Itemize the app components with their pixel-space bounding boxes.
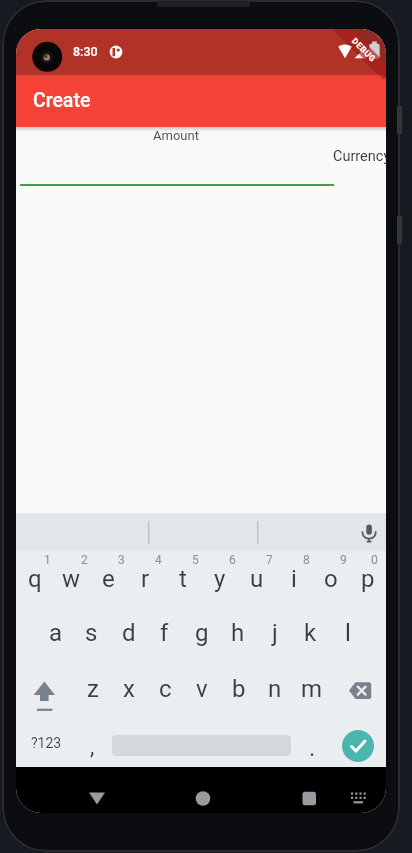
- staticText: k: [304, 619, 317, 647]
- staticText: d: [122, 619, 136, 647]
- staticText: l: [345, 619, 351, 647]
- button[interactable]: f: [146, 613, 183, 653]
- button[interactable]: [26, 671, 62, 711]
- staticText: y: [214, 565, 226, 593]
- staticText: r: [141, 565, 150, 593]
- staticText: Create: [33, 89, 91, 112]
- button[interactable]: o: [312, 559, 349, 599]
- button[interactable]: x: [110, 669, 147, 709]
- button[interactable]: l: [329, 613, 366, 653]
- button[interactable]: Create: [16, 75, 386, 127]
- staticText: Currency: [333, 148, 386, 165]
- staticText: ?123: [31, 735, 62, 751]
- button[interactable]: ,: [74, 727, 111, 767]
- staticText: t: [179, 565, 187, 593]
- staticText: e: [102, 565, 115, 593]
- button[interactable]: [183, 778, 223, 810]
- staticText: u: [250, 565, 264, 593]
- button[interactable]: n: [256, 669, 293, 709]
- staticText: v: [196, 675, 208, 703]
- button[interactable]: m: [293, 669, 330, 709]
- staticText: ,: [90, 734, 95, 760]
- staticText: 8: [303, 553, 310, 567]
- staticText: DEBUG: [350, 36, 378, 64]
- button[interactable]: [340, 671, 376, 711]
- button[interactable]: j: [256, 613, 293, 653]
- staticText: 0: [371, 553, 378, 567]
- button[interactable]: [338, 778, 378, 810]
- button[interactable]: q: [16, 559, 53, 599]
- staticText: p: [361, 565, 375, 593]
- staticText: n: [268, 675, 282, 703]
- staticText: 2: [81, 553, 88, 567]
- button[interactable]: t: [164, 559, 201, 599]
- button[interactable]: a: [37, 613, 74, 653]
- button[interactable]: [77, 778, 117, 810]
- staticText: 7: [266, 553, 273, 567]
- staticText: z: [87, 675, 99, 703]
- button[interactable]: d: [110, 613, 147, 653]
- staticText: 6: [229, 553, 236, 567]
- staticText: q: [28, 565, 42, 593]
- button[interactable]: e: [90, 559, 127, 599]
- staticText: h: [231, 619, 245, 647]
- button[interactable]: c: [147, 669, 184, 709]
- staticText: m: [301, 675, 323, 703]
- staticText: j: [272, 619, 278, 647]
- button[interactable]: k: [292, 613, 329, 653]
- staticText: .: [309, 734, 316, 762]
- staticText: w: [62, 565, 81, 593]
- button[interactable]: .: [294, 728, 331, 768]
- staticText: s: [85, 619, 98, 647]
- staticText: x: [123, 675, 135, 703]
- button[interactable]: g: [183, 613, 220, 653]
- staticText: o: [324, 565, 338, 593]
- staticText: Amount: [153, 128, 199, 143]
- staticText: 5: [192, 553, 199, 567]
- button[interactable]: s: [73, 613, 110, 653]
- staticText: c: [159, 675, 172, 703]
- button[interactable]: u: [238, 559, 275, 599]
- button[interactable]: [352, 517, 384, 549]
- staticText: 1: [44, 553, 51, 567]
- button[interactable]: p: [349, 559, 386, 599]
- button[interactable]: w: [53, 559, 90, 599]
- staticText: 9: [340, 553, 347, 567]
- staticText: a: [49, 619, 63, 647]
- button[interactable]: z: [74, 669, 111, 709]
- button[interactable]: v: [183, 669, 220, 709]
- staticText: b: [232, 675, 246, 703]
- staticText: g: [195, 619, 209, 647]
- button[interactable]: Currency: [333, 148, 386, 170]
- staticText: i: [291, 565, 297, 593]
- staticText: 8:30: [73, 44, 98, 59]
- button[interactable]: h: [219, 613, 256, 653]
- staticText: 4: [155, 553, 162, 567]
- button[interactable]: r: [127, 559, 164, 599]
- button[interactable]: i: [275, 559, 312, 599]
- staticText: f: [160, 619, 169, 647]
- button[interactable]: y: [201, 559, 238, 599]
- button[interactable]: [342, 730, 374, 762]
- button[interactable]: ?123: [28, 723, 65, 763]
- button[interactable]: [289, 778, 329, 810]
- staticText: 3: [118, 553, 125, 567]
- button[interactable]: b: [220, 669, 257, 709]
